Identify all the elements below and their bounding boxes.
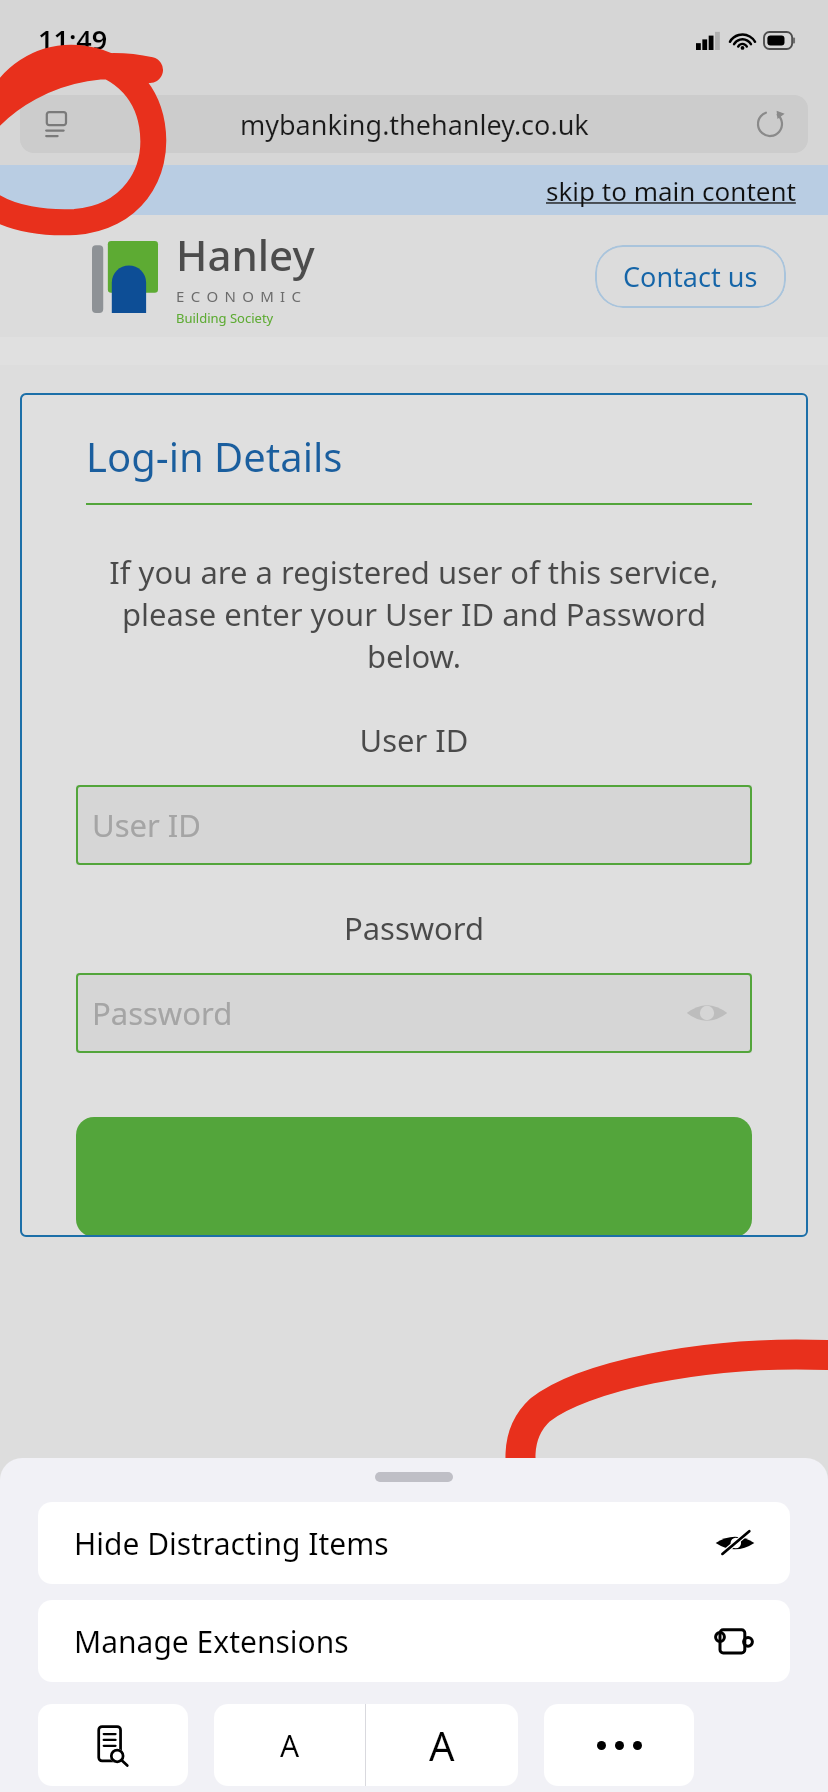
button[interactable]: Contact us [595, 245, 786, 308]
button[interactable]: Increase text size [366, 1704, 518, 1786]
staticText: User ID [92, 804, 201, 846]
staticText: If you are a registered user of this ser… [76, 551, 752, 677]
staticText: Building Society [176, 309, 274, 327]
button[interactable]: User ID [76, 785, 752, 865]
staticText: E C O N O M I C [176, 286, 303, 306]
staticText: Password [68, 907, 760, 949]
staticText: A [429, 1718, 455, 1772]
staticText: Hanley [176, 226, 315, 283]
button[interactable]: Reader view [38, 1704, 188, 1786]
button[interactable]: Password [76, 973, 752, 1053]
button[interactable]: Show password [682, 988, 732, 1038]
staticText: User ID [68, 719, 760, 761]
staticText: Manage Extensions [74, 1621, 349, 1662]
button[interactable]: Decrease text size [214, 1704, 365, 1786]
button[interactable]: skip to main content [546, 173, 796, 208]
staticText: Hide Distracting Items [74, 1523, 389, 1564]
button[interactable]: Page settings [40, 107, 74, 141]
staticText: A [280, 1725, 300, 1766]
button[interactable]: Manage Extensions [38, 1600, 790, 1682]
button[interactable]: Page settings [20, 95, 808, 153]
staticText: 11:49 [38, 21, 108, 58]
staticText: mybanking.thehanley.co.uk [240, 106, 589, 143]
button[interactable]: Hide Distracting Items [38, 1502, 790, 1584]
button[interactable] [76, 1117, 752, 1237]
button[interactable]: Reload [752, 106, 788, 142]
staticText: Password [92, 992, 233, 1034]
staticText: Log-in Details [86, 429, 343, 483]
button[interactable]: More options [544, 1704, 694, 1786]
staticText: Contact us [623, 258, 758, 295]
